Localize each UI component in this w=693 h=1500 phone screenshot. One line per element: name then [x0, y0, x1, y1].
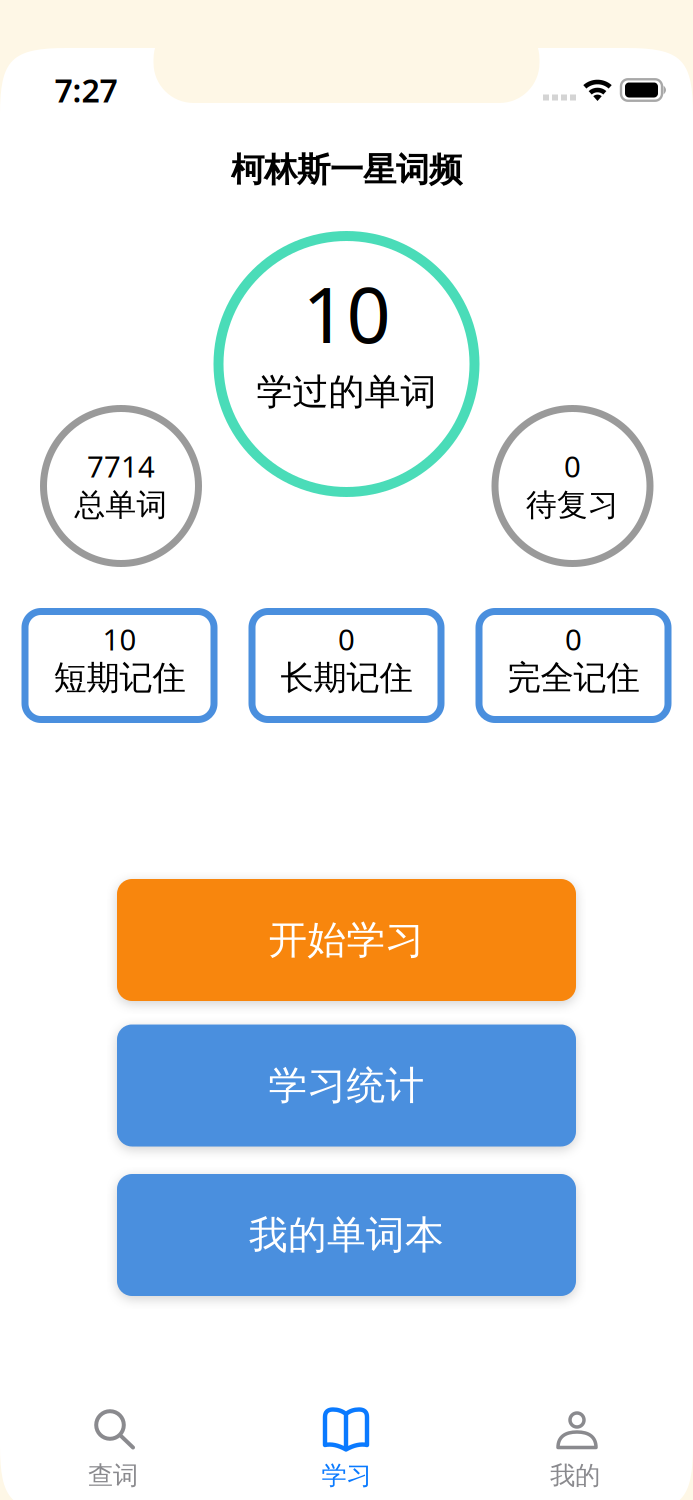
staticText: 我的单词本 [249, 1211, 444, 1259]
staticText: 短期记住 [53, 657, 185, 698]
staticText: 0 [565, 619, 582, 658]
staticText: 10 [302, 262, 390, 364]
button[interactable]: 学习 [276, 1389, 416, 1499]
button[interactable]: 我的 [505, 1389, 645, 1499]
staticText: 7714 [87, 446, 155, 485]
staticText: 开始学习 [268, 916, 424, 964]
staticText: 待复习 [526, 486, 619, 524]
staticText: 柯林斯一星词频 [231, 149, 462, 190]
button[interactable]: 学习统计 [117, 1024, 576, 1146]
staticText: 学过的单词 [256, 370, 436, 414]
staticText: 查词 [88, 1460, 138, 1491]
staticText: 0 [564, 446, 581, 485]
staticText: 长期记住 [280, 657, 412, 698]
staticText: 0 [338, 619, 355, 658]
staticText: 完全记住 [507, 657, 639, 698]
button[interactable]: 开始学习 [117, 879, 576, 1001]
button[interactable]: 我的单词本 [117, 1174, 576, 1296]
staticText: 我的 [550, 1460, 600, 1491]
staticText: 学习 [321, 1460, 371, 1491]
staticText: 学习统计 [268, 1062, 424, 1109]
staticText: 总单词 [74, 486, 167, 524]
button[interactable]: 查词 [43, 1389, 183, 1499]
staticText: 10 [102, 619, 136, 658]
staticText: 7:27 [54, 69, 117, 111]
